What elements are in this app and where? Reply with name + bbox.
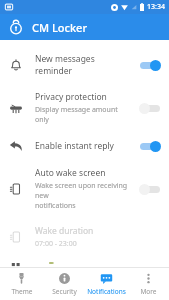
button[interactable]: Enable instant reply [0,132,169,160]
button[interactable]: Auto wake screen [0,160,169,218]
staticText: New messages reminder [35,53,133,77]
staticText: Wake screen upon receiving new [35,181,133,201]
button[interactable]: CM Locker [8,19,24,35]
staticText: Privacy protection [35,91,107,103]
staticText: Security [52,287,77,296]
button[interactable]: App selection [0,256,169,267]
button[interactable]: Toggle on [139,140,161,152]
button[interactable]: Theme [0,268,43,300]
staticText: More [140,287,157,296]
staticText: CM Locker [32,20,88,35]
staticText: Auto wake screen [35,167,106,179]
staticText: notifications [35,201,76,211]
staticText: Theme [11,287,33,296]
button[interactable]: Security [43,268,85,300]
button[interactable]: Wake duration [0,218,169,256]
staticText: Enable instant reply [35,140,114,152]
button[interactable]: More [127,268,169,300]
button[interactable]: Toggle on [139,59,161,71]
staticText: Display message amount only [35,105,133,125]
staticText: Notifications [87,287,126,296]
staticText: Wake duration [35,225,94,237]
button[interactable]: Toggle off [139,102,161,114]
staticText: 13:34 [147,2,165,12]
staticText: 07:00 - 23:00 [35,239,77,249]
button[interactable]: Privacy protection [0,84,169,132]
button[interactable]: New messages reminder [0,46,169,84]
button[interactable]: Toggle off [139,183,161,195]
button[interactable]: Notifications [85,268,127,300]
